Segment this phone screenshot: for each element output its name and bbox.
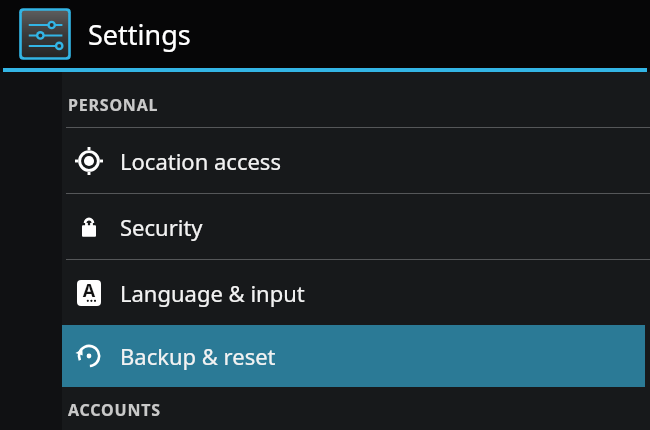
button[interactable]: Backup & reset xyxy=(62,325,645,387)
staticText: Security xyxy=(120,212,203,242)
staticText: Language & input xyxy=(120,278,305,308)
staticText: A xyxy=(77,280,101,303)
staticText: Backup & reset xyxy=(120,341,276,371)
staticText: PERSONAL xyxy=(68,94,159,116)
staticText: Settings xyxy=(88,16,191,53)
button[interactable]: Settings xyxy=(0,0,650,68)
staticText: Location access xyxy=(120,146,281,176)
button[interactable]: Security xyxy=(62,194,645,259)
other: Settings xyxy=(16,5,74,63)
button[interactable]: Location access xyxy=(62,128,645,193)
staticText: ACCOUNTS xyxy=(68,399,161,421)
button[interactable]: A xyxy=(62,260,645,325)
